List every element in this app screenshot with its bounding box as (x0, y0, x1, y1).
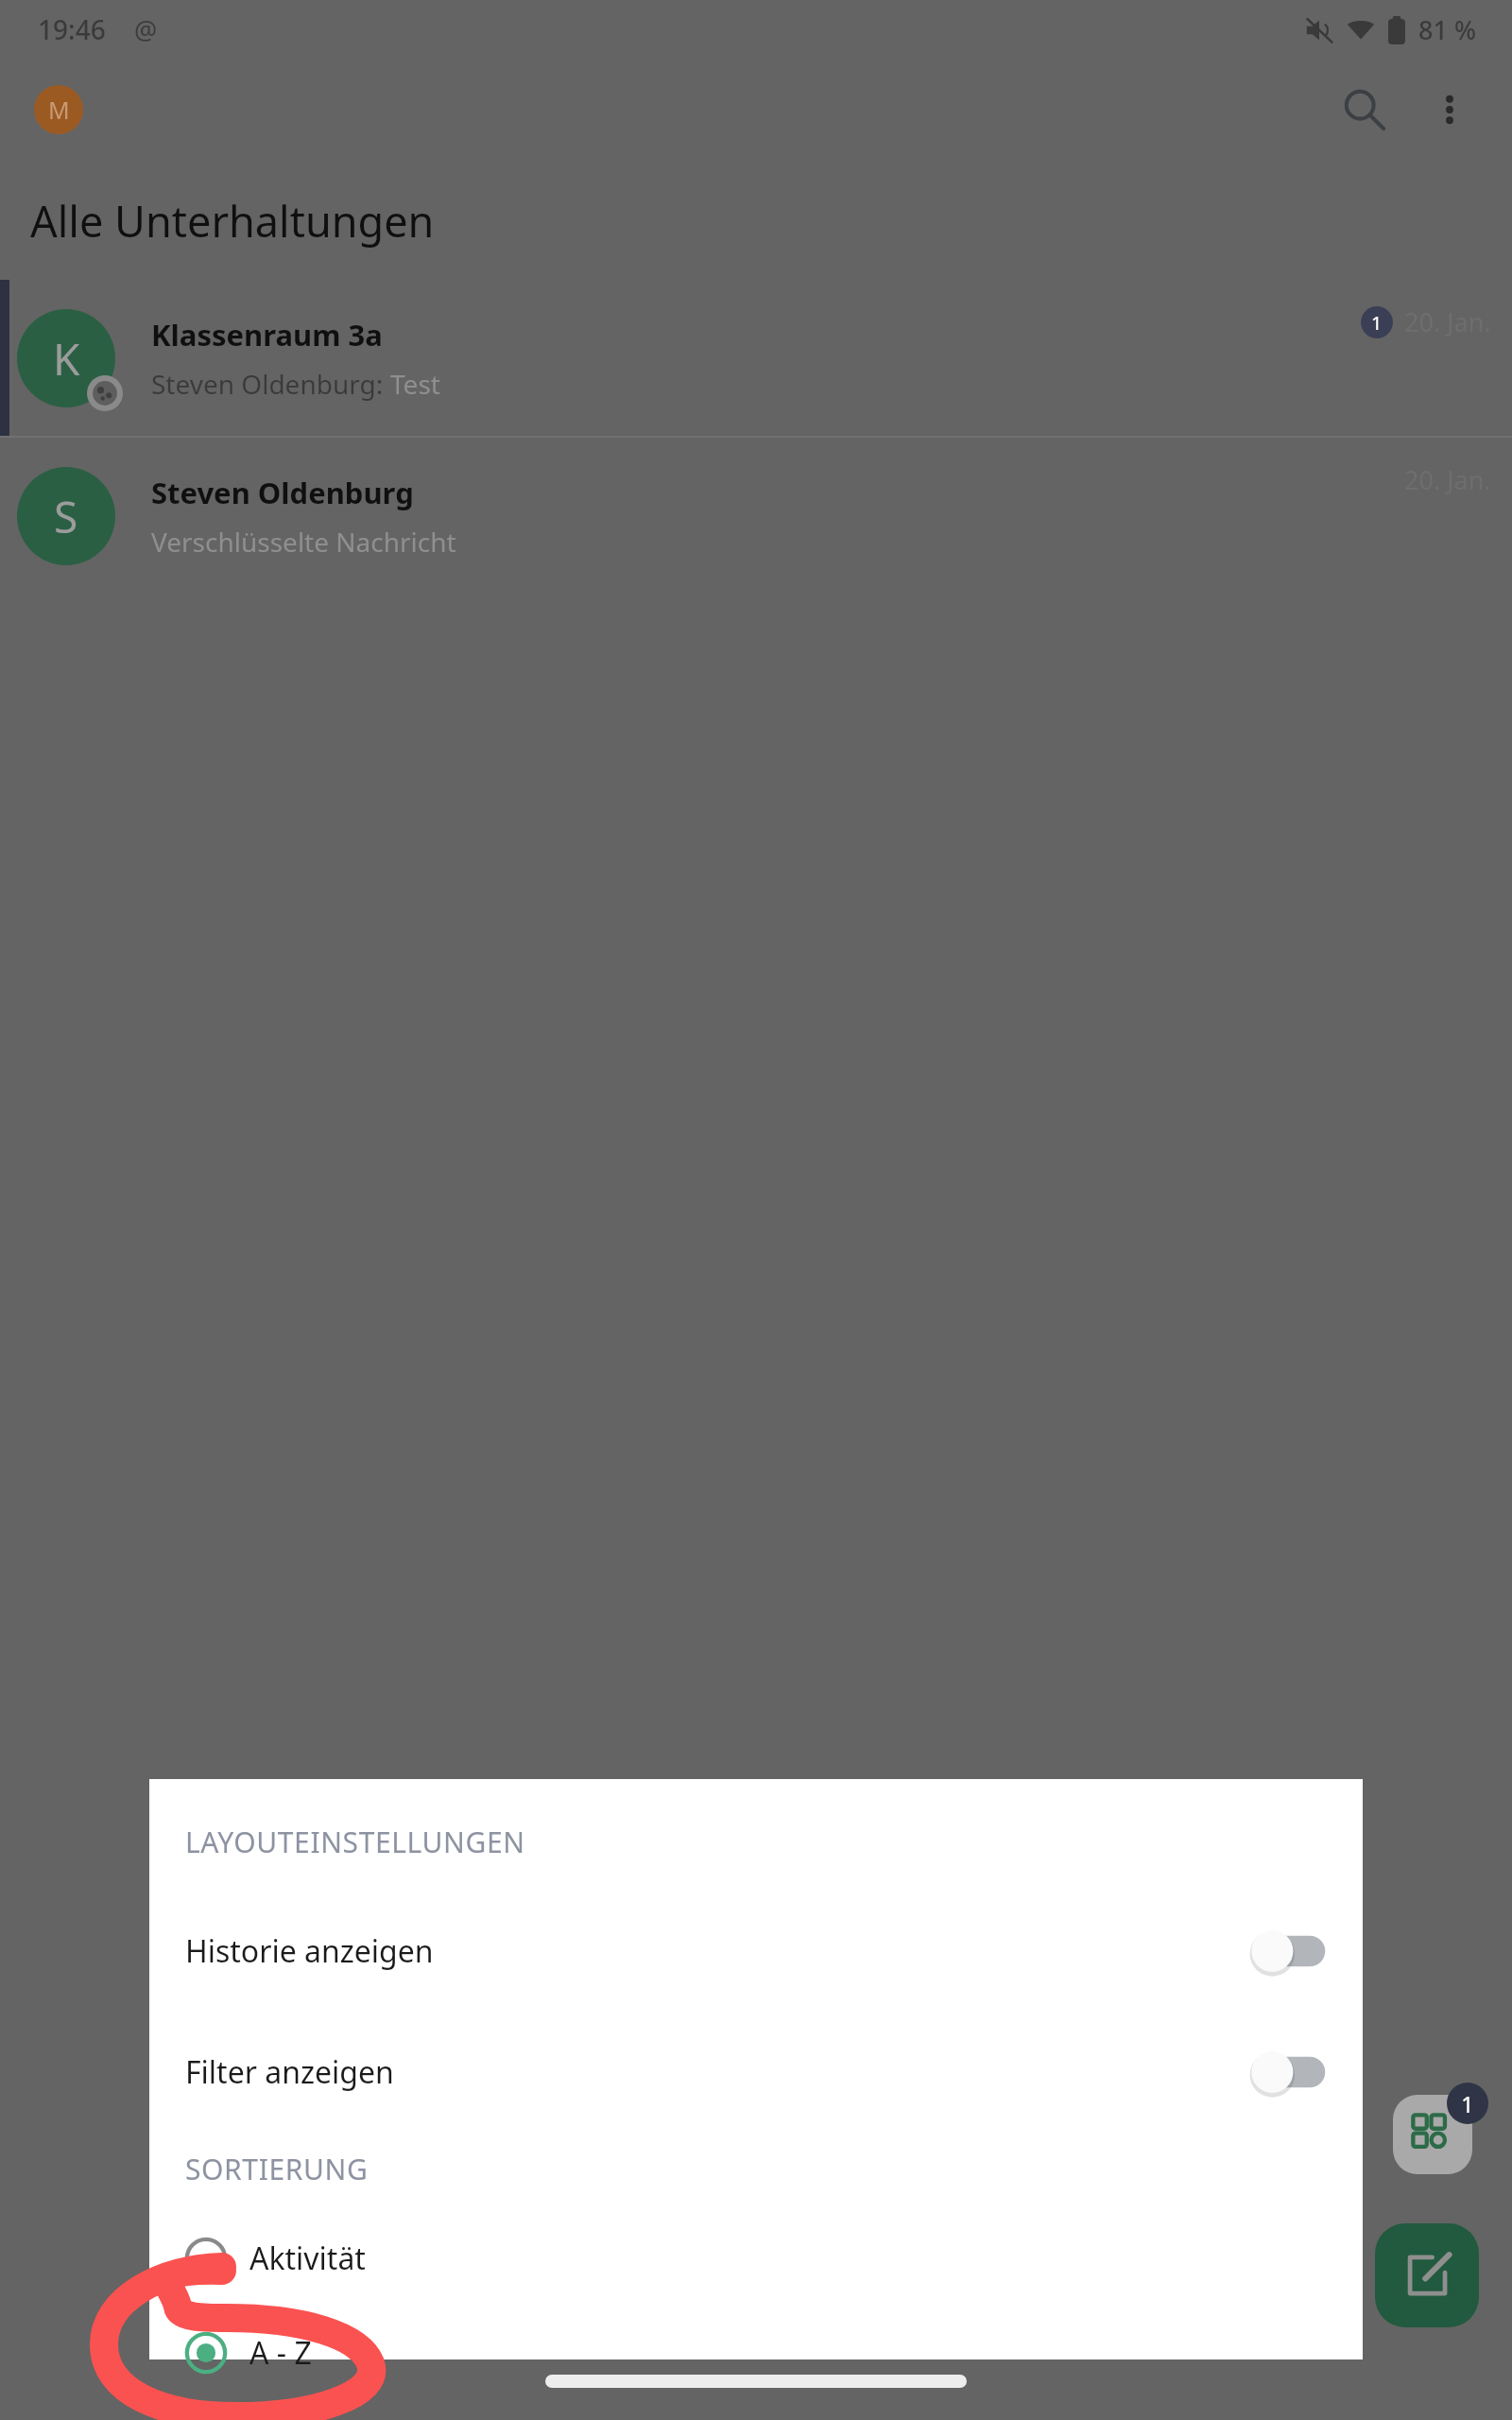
button[interactable]: A - Z (149, 2311, 1363, 2394)
staticText: SORTIERUNG (185, 2150, 369, 2188)
staticText: M (48, 94, 70, 126)
staticText: 20. Jan. (1404, 304, 1491, 339)
staticText: S (54, 487, 78, 546)
button[interactable]: Apps (1393, 2095, 1472, 2174)
button[interactable]: Historie anzeigen (149, 1902, 1363, 2000)
button[interactable]: S (0, 438, 1512, 594)
staticText: 1 (1461, 2088, 1474, 2119)
staticText: Verschlüsselte Nachricht (151, 524, 456, 560)
button[interactable]: K (0, 280, 1512, 436)
staticText: K (53, 329, 80, 389)
staticText: 81 % (1418, 12, 1476, 47)
staticText: A - Z (249, 2332, 312, 2374)
button[interactable]: Neue Nachricht verfassen (1375, 2223, 1479, 2327)
staticText: Steven Oldenburg (151, 473, 414, 512)
button[interactable]: Aktivität (149, 2217, 1363, 2300)
staticText: Test (390, 366, 440, 402)
staticText: @ (134, 12, 158, 47)
staticText: Alle Unterhaltungen (30, 192, 435, 250)
staticText: 19:46 (38, 11, 106, 47)
button[interactable]: Weitere Optionen (1410, 70, 1489, 149)
staticText: LAYOUTEINSTELLUNGEN (185, 1823, 525, 1861)
staticText: 1 (1371, 310, 1383, 336)
button[interactable]: Filter anzeigen (149, 2023, 1363, 2121)
button[interactable]: Suchen (1319, 64, 1410, 155)
button[interactable]: Profil (34, 85, 83, 134)
staticText: Klassenraum 3a (151, 315, 383, 354)
staticText: 20. Jan. (1404, 462, 1491, 497)
staticText: Steven Oldenburg: (151, 366, 390, 402)
staticText: Historie anzeigen (185, 1930, 434, 1972)
staticText: Filter anzeigen (185, 2051, 394, 2093)
staticText: Aktivität (249, 2238, 366, 2279)
